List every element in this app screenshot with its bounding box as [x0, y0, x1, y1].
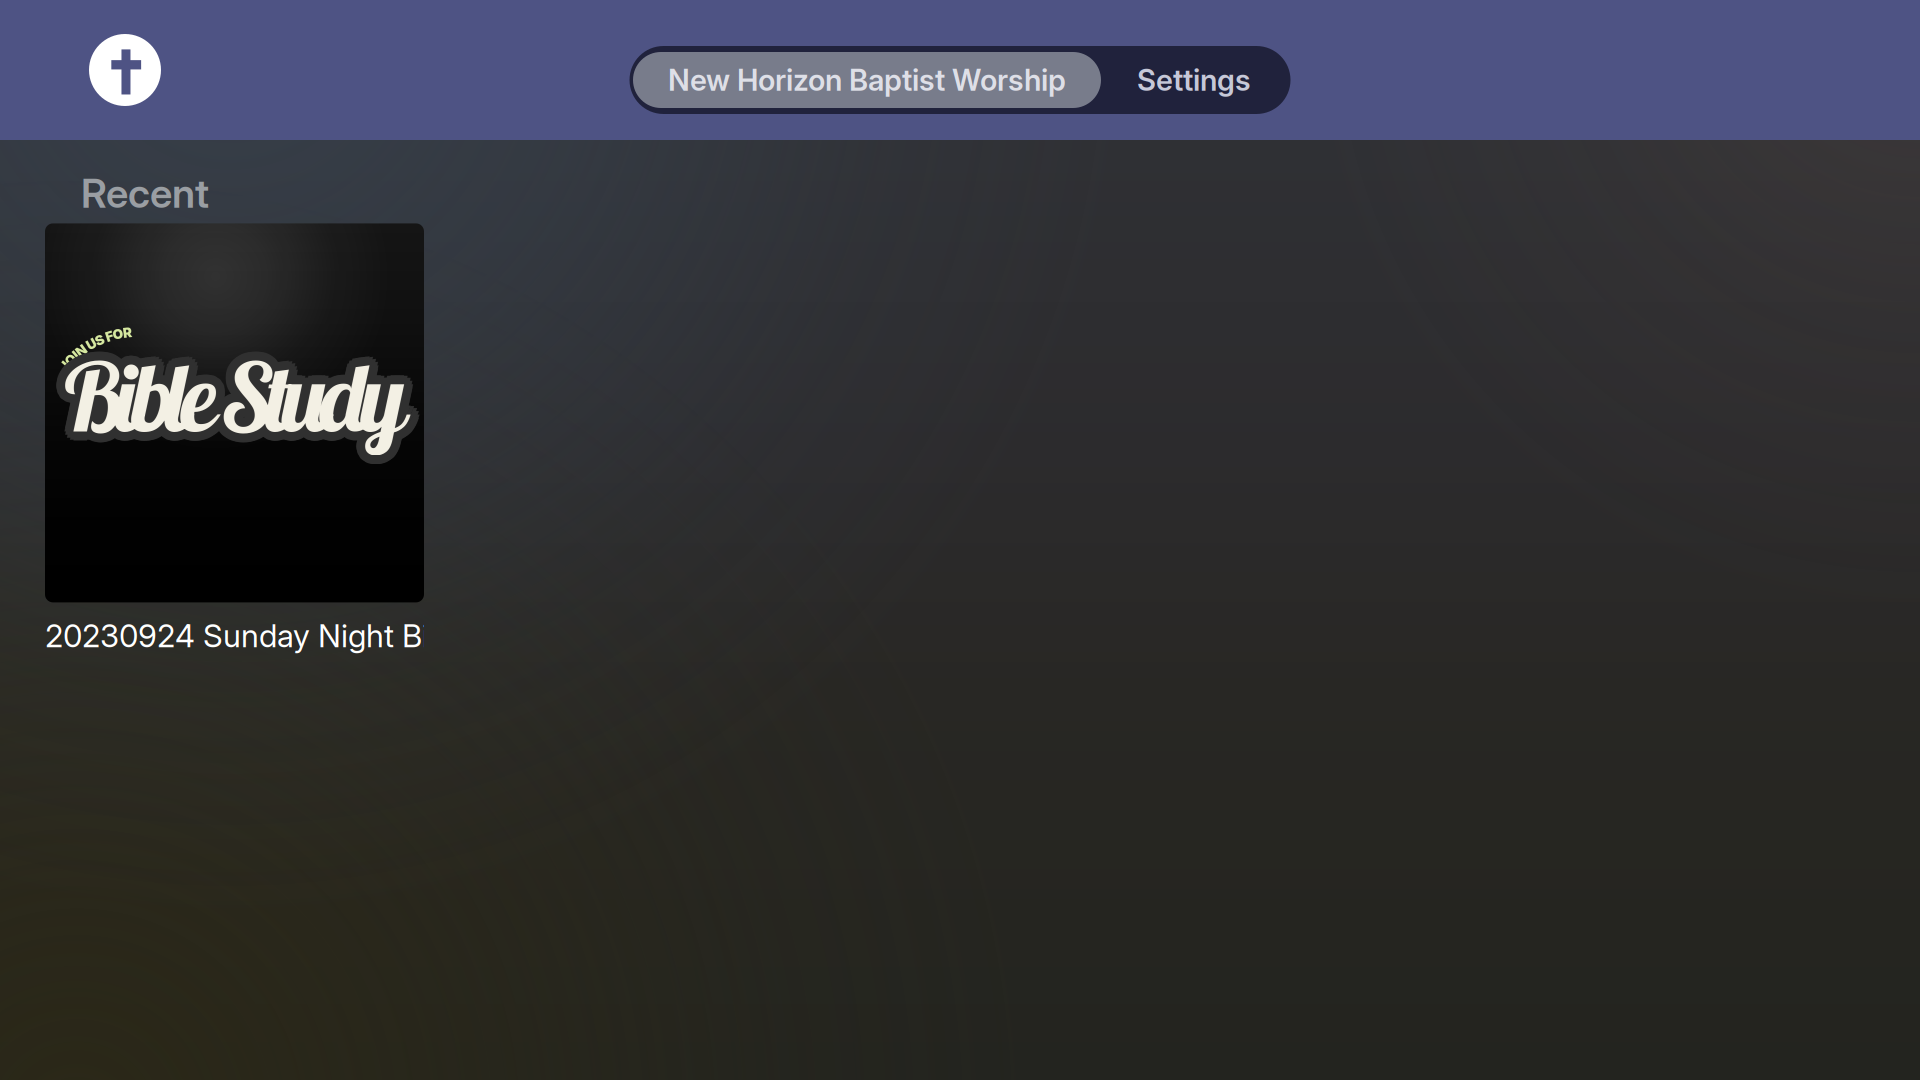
- staticText: Bible Study: [70, 331, 413, 448]
- staticText: Bible Study: [58, 344, 401, 461]
- staticText: Bible Study: [70, 344, 413, 461]
- staticText: Bible Study: [61, 346, 404, 463]
- staticText: Bible Study: [67, 329, 410, 447]
- staticText: Settings: [1137, 62, 1251, 98]
- staticText: Bible Study: [64, 337, 407, 455]
- staticText: Bible Study: [72, 334, 415, 451]
- staticText: Bible Study: [58, 331, 401, 448]
- staticText: O: [113, 326, 124, 342]
- staticText: O: [65, 351, 76, 368]
- staticText: Bible Study: [64, 346, 407, 464]
- staticText: U: [86, 336, 96, 352]
- staticText: Bible Study: [72, 341, 415, 458]
- staticText: Bible Study: [73, 337, 416, 455]
- staticText: Bible Study: [61, 329, 404, 447]
- staticText: J: [61, 358, 69, 374]
- staticText: Bible Study: [55, 337, 398, 455]
- staticText: Recent: [81, 169, 209, 217]
- button[interactable]: J: [45, 223, 424, 660]
- button[interactable]: New Horizon Baptist Worship: [633, 52, 1101, 108]
- button[interactable]: Church: [89, 34, 161, 106]
- staticText: I: [74, 347, 78, 363]
- staticText: Bible Study: [64, 328, 407, 446]
- staticText: 20230924 Sunday Night Bible Study: [45, 617, 563, 655]
- button[interactable]: Settings: [1101, 52, 1287, 108]
- staticText: Bible Study: [56, 334, 399, 451]
- staticText: F: [106, 328, 114, 345]
- staticText: R: [123, 324, 132, 341]
- staticText: Bible Study: [56, 341, 399, 458]
- staticText: New Horizon Baptist Worship: [668, 62, 1066, 98]
- staticText: S: [95, 332, 104, 348]
- staticText: N: [76, 342, 86, 359]
- staticText: Bible Study: [67, 346, 410, 463]
